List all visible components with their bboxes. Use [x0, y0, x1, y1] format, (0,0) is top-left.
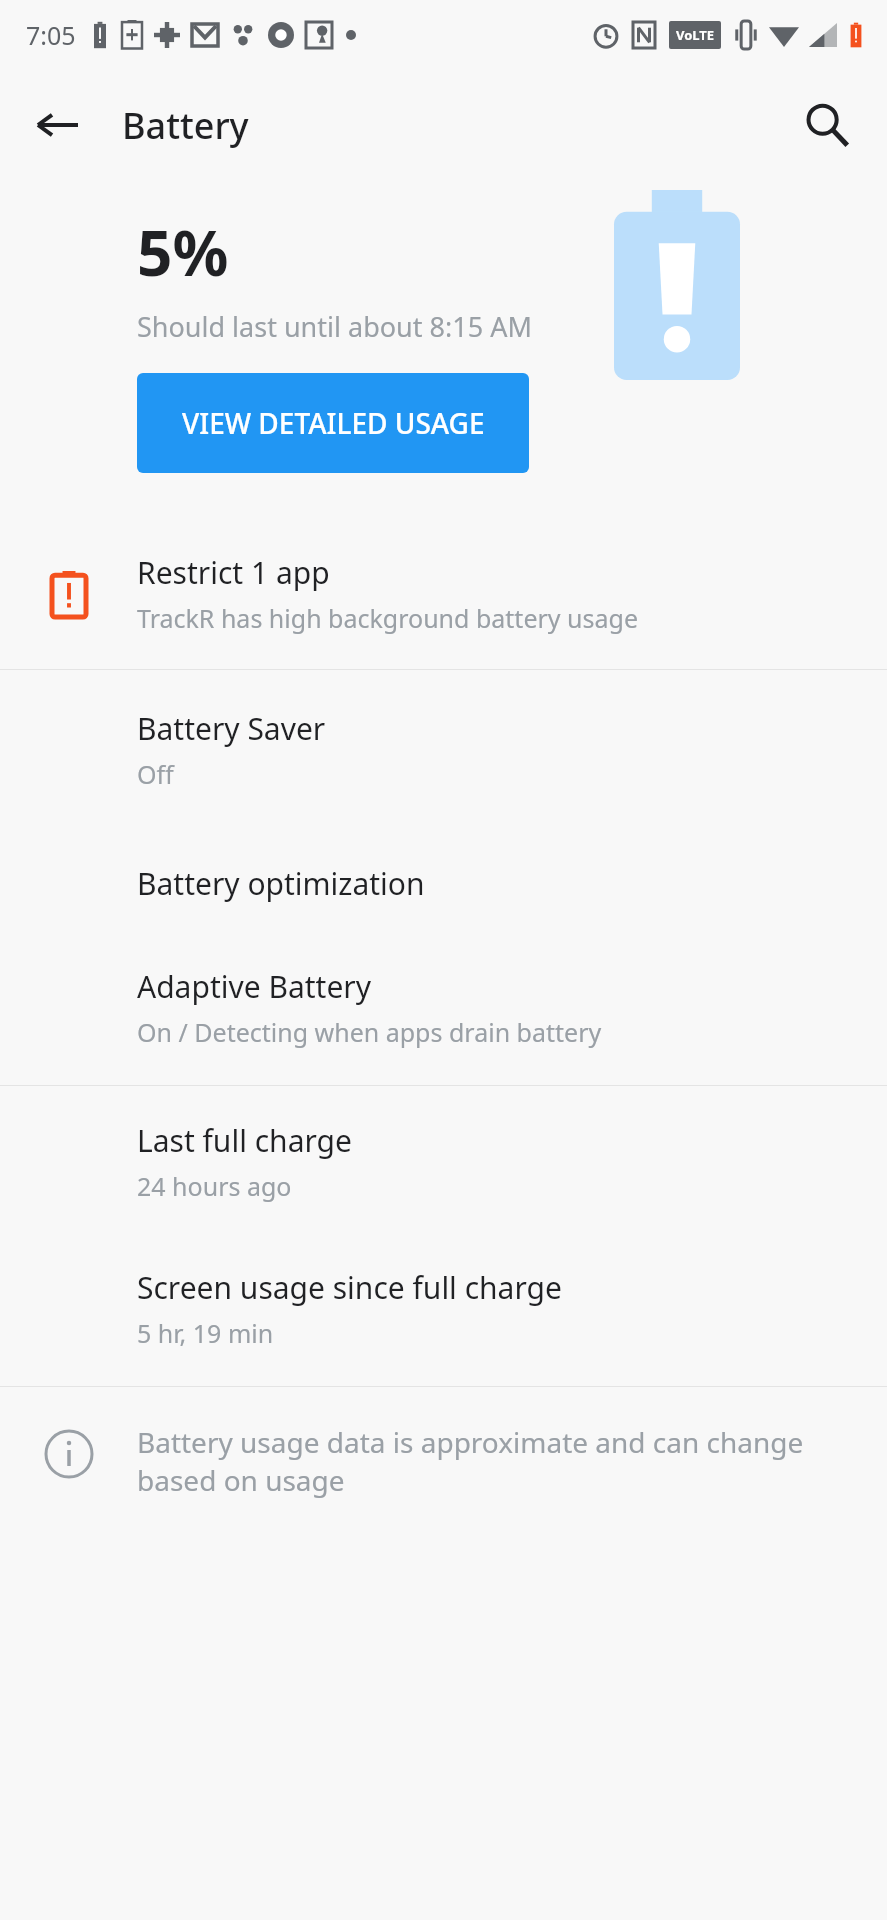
staticText: Off — [137, 757, 174, 791]
button[interactable]: Restrict 1 app — [0, 530, 887, 669]
staticText: Screen usage since full charge — [137, 1267, 562, 1308]
staticText: On / Detecting when apps drain battery — [137, 1015, 602, 1049]
button[interactable]: Battery optimization — [0, 821, 887, 946]
staticText: VIEW DETAILED USAGE — [182, 404, 485, 442]
button[interactable]: Back — [30, 97, 86, 153]
staticText: Battery Saver — [137, 708, 326, 749]
button[interactable]: VIEW DETAILED USAGE — [137, 373, 529, 473]
staticText: TrackR has high background battery usage — [137, 601, 638, 635]
button[interactable]: Screen usage since full charge — [0, 1233, 887, 1386]
button[interactable]: Battery usage data is approximate and ca… — [0, 1387, 887, 1529]
staticText: Battery optimization — [137, 863, 425, 904]
staticText: 24 hours ago — [137, 1169, 292, 1203]
staticText: 5 hr, 19 min — [137, 1316, 274, 1350]
button[interactable]: Adaptive Battery — [0, 946, 887, 1085]
button[interactable]: Last full charge — [0, 1086, 887, 1233]
staticText: Battery — [122, 101, 249, 150]
staticText: 7:05 — [26, 18, 76, 52]
staticText: Restrict 1 app — [137, 552, 330, 593]
staticText: Battery usage data is approximate and ca… — [137, 1423, 804, 1499]
staticText: Last full charge — [137, 1120, 352, 1161]
staticText: Should last until about 8:15 AM — [137, 308, 532, 345]
button[interactable]: Search — [797, 95, 857, 155]
staticText: VoLTE — [676, 26, 715, 44]
staticText: Adaptive Battery — [137, 966, 372, 1007]
button[interactable]: Battery Saver — [0, 670, 887, 821]
staticText: 5% — [137, 210, 229, 294]
